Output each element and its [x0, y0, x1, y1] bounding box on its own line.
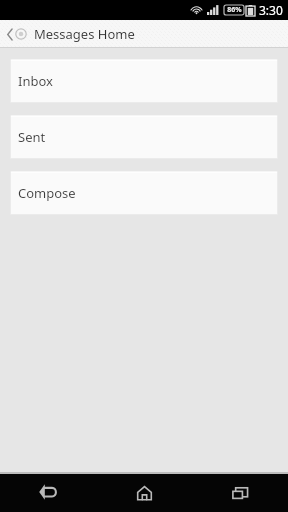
staticText: Compose — [18, 184, 76, 202]
staticText: 86% — [227, 5, 242, 15]
staticText: Sent — [18, 128, 46, 146]
button[interactable]: Recent apps — [192, 474, 288, 512]
button[interactable]: Back to Messages Home — [6, 25, 136, 43]
button[interactable]: Sent — [10, 115, 278, 159]
staticText: Messages Home — [34, 25, 135, 43]
button[interactable]: Inbox — [10, 59, 278, 103]
staticText: 3:30 — [259, 2, 283, 18]
staticText: Inbox — [18, 72, 53, 90]
button[interactable]: Compose — [10, 171, 278, 215]
button[interactable]: Back — [0, 474, 96, 512]
button[interactable]: Home — [96, 474, 192, 512]
